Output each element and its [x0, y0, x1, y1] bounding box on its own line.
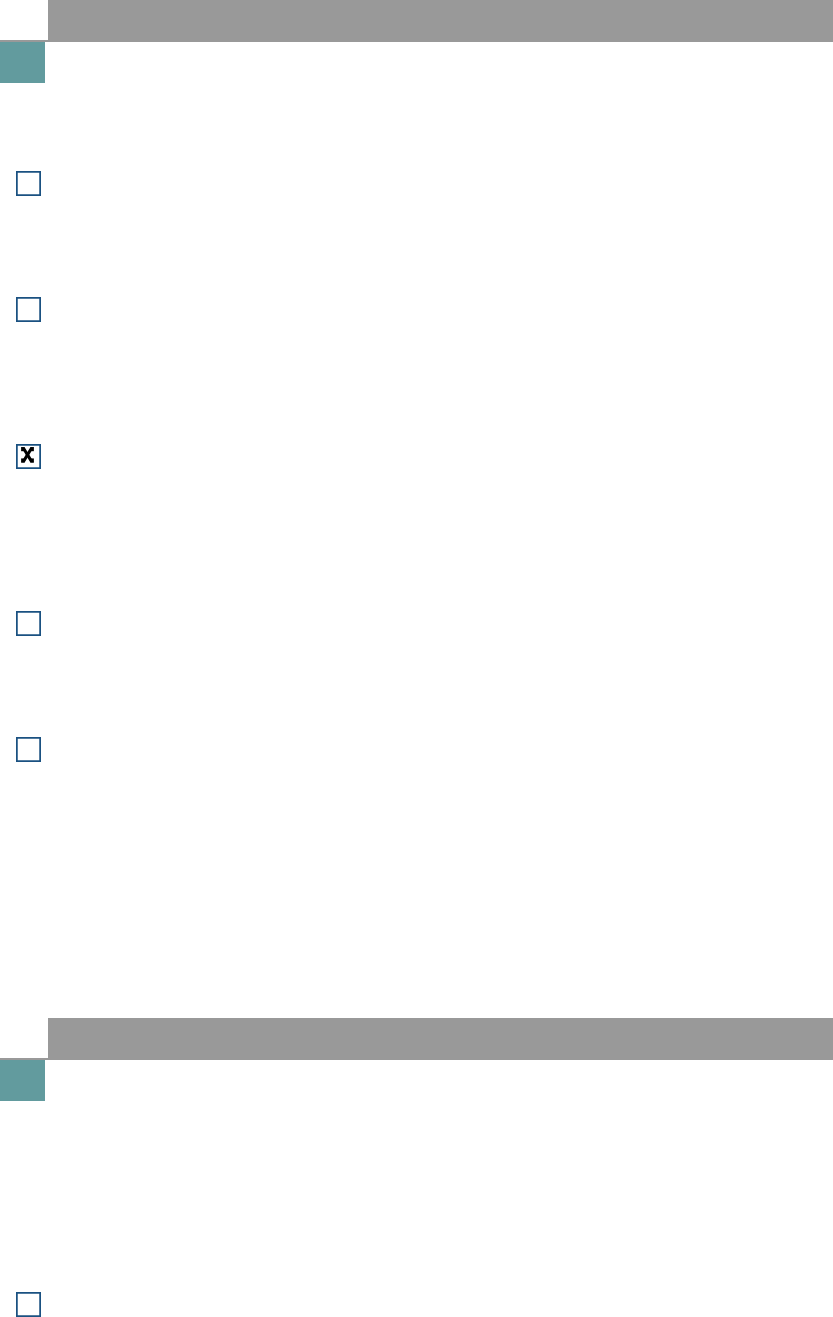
button[interactable]: Section 2	[0, 1018, 833, 1101]
button[interactable]: Option 3, selected	[0, 444, 833, 469]
button[interactable]: Option 1	[0, 171, 833, 196]
button[interactable]: Option 2	[0, 297, 833, 322]
button[interactable]: Option 6	[0, 1292, 833, 1317]
button[interactable]: Option 4	[0, 611, 833, 636]
button[interactable]: Option 5	[0, 737, 833, 762]
button[interactable]: Section 1	[0, 0, 833, 83]
